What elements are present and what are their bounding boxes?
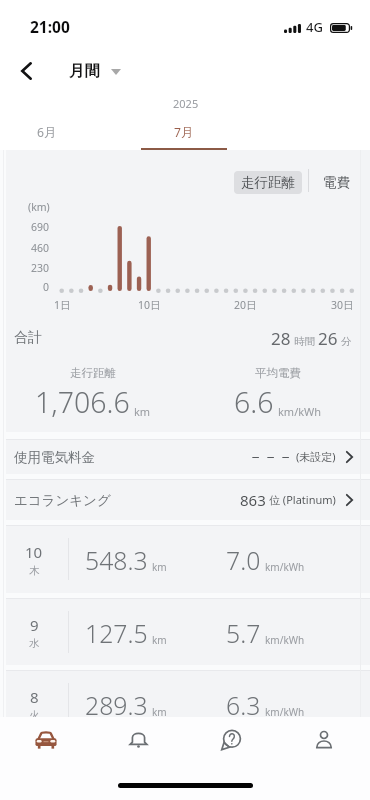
staticText: km/kWh xyxy=(265,560,305,574)
staticText: 9 xyxy=(30,615,39,635)
button[interactable]: 電費 xyxy=(316,171,357,194)
staticText: km/kWh xyxy=(265,633,305,647)
staticText: 6月 xyxy=(37,124,57,141)
staticText: 走行距離 xyxy=(241,174,295,191)
button[interactable]: 6月 xyxy=(4,124,90,150)
staticText: 1,706.6 xyxy=(35,383,130,422)
staticText: 26 xyxy=(318,327,338,350)
staticText: 水 xyxy=(29,637,40,650)
button[interactable]: Vehicle xyxy=(0,717,92,762)
staticText: 平均電費 xyxy=(255,366,301,380)
staticText: 使用電気料金 xyxy=(14,449,95,466)
staticText: 走行距離 xyxy=(70,366,116,380)
button[interactable]: エコランキング xyxy=(0,480,370,520)
staticText: 28 xyxy=(271,327,291,350)
button[interactable]: Back xyxy=(0,48,53,93)
staticText: km xyxy=(134,404,151,419)
staticText: 4G xyxy=(306,18,323,36)
button[interactable]: 使用電気料金 xyxy=(0,440,370,474)
staticText: 127.5 xyxy=(85,616,148,650)
staticText: 30日 xyxy=(331,298,354,312)
staticText: 0 xyxy=(43,280,50,294)
staticText: エコランキング xyxy=(14,492,111,509)
staticText: 8 xyxy=(30,687,39,707)
staticText: (km) xyxy=(28,200,50,214)
staticText: 5.7 xyxy=(226,616,261,650)
button[interactable]: 10 xyxy=(0,526,370,593)
staticText: 21:00 xyxy=(30,16,70,37)
staticText: －－－ xyxy=(248,448,293,467)
staticText: 7.0 xyxy=(226,543,261,577)
staticText: km xyxy=(152,705,167,719)
button[interactable]: 7月 xyxy=(141,124,227,150)
button[interactable]: 月間 xyxy=(61,55,129,87)
staticText: 289.3 xyxy=(85,688,148,722)
staticText: 10日 xyxy=(138,298,161,312)
staticText: 2025 xyxy=(173,96,199,111)
button[interactable]: Notifications xyxy=(92,717,184,762)
button[interactable]: 9 xyxy=(0,599,370,665)
staticText: 10 xyxy=(25,542,43,562)
staticText: 460 xyxy=(31,241,50,255)
button[interactable]: Help xyxy=(184,717,277,762)
staticText: 6.6 xyxy=(234,383,274,422)
button[interactable]: 走行距離 xyxy=(234,171,302,194)
staticText: 火 xyxy=(29,709,40,722)
staticText: 20日 xyxy=(234,298,257,312)
staticText: 木 xyxy=(29,564,40,577)
staticText: 合計 xyxy=(14,329,42,347)
staticText: 7月 xyxy=(174,124,194,141)
staticText: 690 xyxy=(31,220,50,234)
staticText: 月間 xyxy=(69,61,100,81)
staticText: 863 xyxy=(240,490,266,510)
staticText: km/kWh xyxy=(265,705,305,719)
staticText: km xyxy=(152,633,167,647)
staticText: 分 xyxy=(341,335,352,348)
staticText: (未設定) xyxy=(296,449,336,464)
button[interactable]: 8 xyxy=(0,671,370,717)
staticText: km/kWh xyxy=(278,404,322,419)
staticText: km xyxy=(152,560,167,574)
staticText: 6.3 xyxy=(226,688,261,722)
staticText: 電費 xyxy=(323,174,350,191)
button[interactable]: Profile xyxy=(277,717,370,762)
staticText: 230 xyxy=(31,261,50,275)
staticText: 時間 xyxy=(294,335,315,348)
staticText: 位 (Platinum) xyxy=(269,492,336,507)
staticText: 548.3 xyxy=(85,543,148,577)
staticText: 1日 xyxy=(54,298,71,312)
